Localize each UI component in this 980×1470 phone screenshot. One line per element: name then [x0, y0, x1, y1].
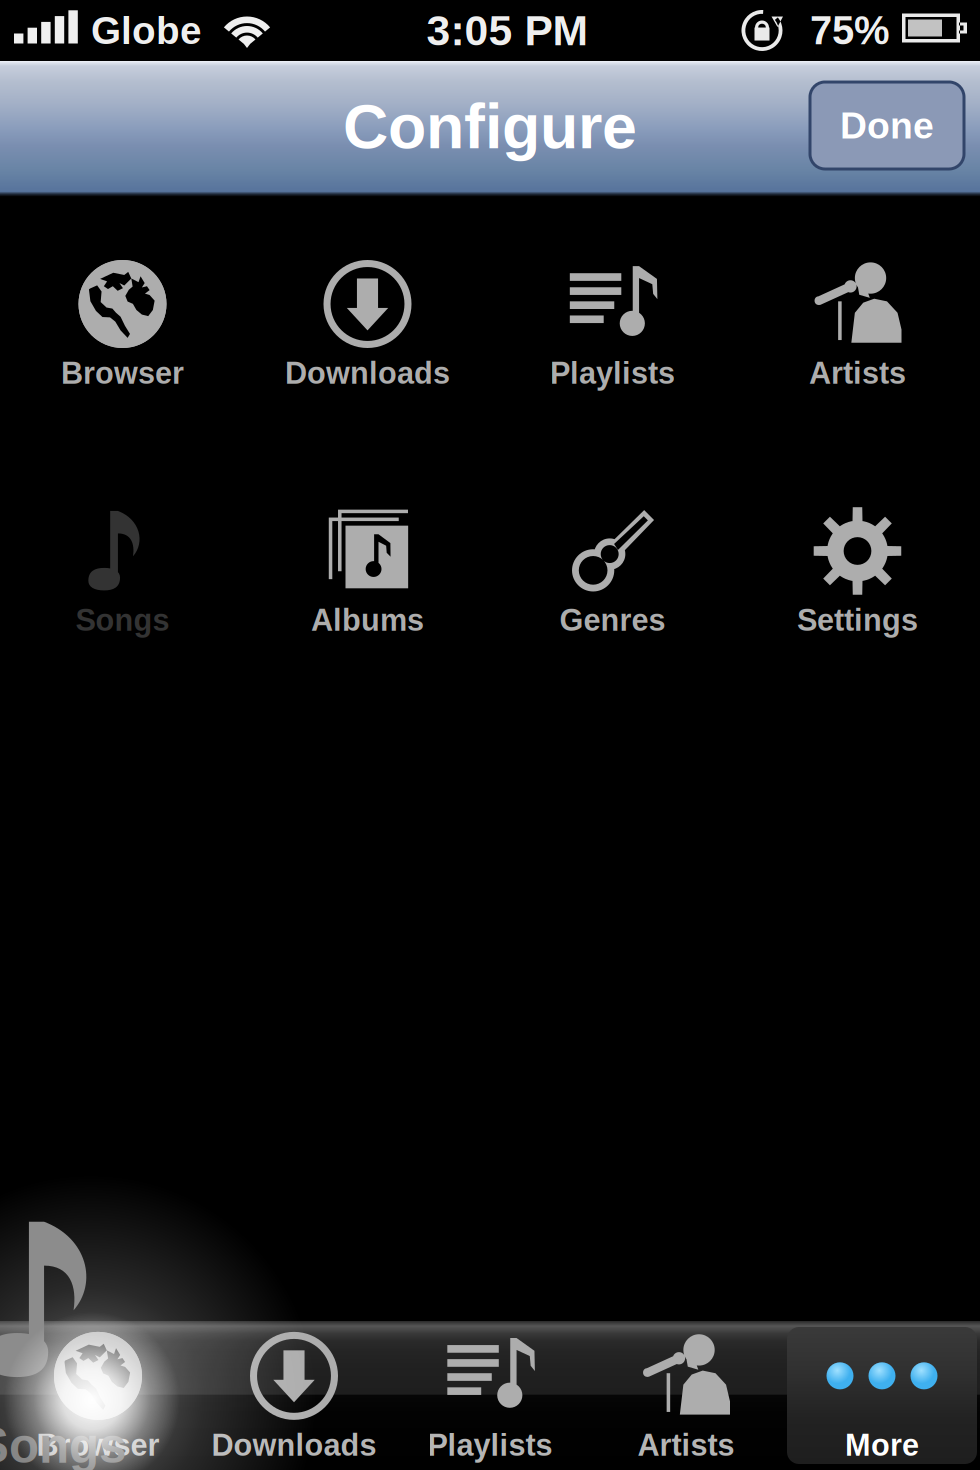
staticText: Done: [840, 105, 934, 146]
button[interactable]: Downloads: [196, 1321, 392, 1470]
staticText: Playlists: [427, 1428, 552, 1462]
staticText: Configure: [343, 91, 637, 161]
staticText: 75%: [810, 8, 890, 53]
button[interactable]: More: [784, 1321, 980, 1470]
button[interactable]: Artists: [588, 1321, 784, 1470]
button[interactable]: Done: [810, 82, 964, 169]
button[interactable]: Playlists: [392, 1321, 588, 1470]
staticText: Browser: [36, 1428, 159, 1462]
staticText: Globe: [91, 9, 202, 52]
button[interactable]: Browser: [0, 1321, 196, 1470]
button[interactable]: Songs: [0, 507, 245, 631]
button[interactable]: Playlists: [490, 260, 735, 384]
staticText: Downloads: [285, 356, 450, 390]
staticText: More: [845, 1428, 919, 1462]
staticText: Genres: [559, 603, 665, 637]
button[interactable]: Settings: [735, 507, 980, 631]
staticText: Playlists: [550, 356, 675, 390]
staticText: 3:05 PM: [426, 7, 588, 54]
staticText: Songs: [75, 603, 169, 637]
staticText: Settings: [797, 603, 918, 637]
button[interactable]: Albums: [245, 507, 490, 631]
staticText: Artists: [809, 356, 906, 390]
staticText: Songs: [0, 1418, 126, 1470]
button[interactable]: Genres: [490, 507, 735, 631]
button[interactable]: Browser: [0, 260, 245, 384]
staticText: Browser: [61, 356, 184, 390]
staticText: Downloads: [211, 1428, 376, 1462]
button[interactable]: Downloads: [245, 260, 490, 384]
staticText: Albums: [311, 603, 424, 637]
button[interactable]: Artists: [735, 260, 980, 384]
staticText: Artists: [637, 1428, 734, 1462]
